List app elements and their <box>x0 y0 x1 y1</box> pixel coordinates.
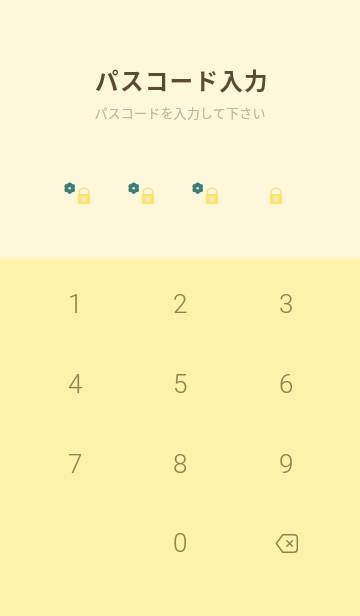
staticText: 6 <box>279 369 294 399</box>
staticText: パスコード入力 <box>2 63 360 97</box>
button[interactable]: 0 <box>144 514 216 572</box>
button[interactable]: 8 <box>144 435 216 493</box>
staticText: 2 <box>173 289 188 319</box>
button[interactable]: 7 <box>39 435 111 493</box>
button[interactable]: 6 <box>250 355 322 413</box>
button[interactable]: 9 <box>250 435 322 493</box>
staticText: 7 <box>68 449 83 479</box>
button[interactable]: 1 <box>39 275 111 333</box>
button[interactable]: 3 <box>250 275 322 333</box>
button[interactable]: 5 <box>144 355 216 413</box>
staticText: 5 <box>173 369 188 399</box>
button[interactable]: Delete <box>250 514 322 572</box>
staticText: 0 <box>173 528 188 558</box>
staticText: パスコードを入力して下さい <box>0 103 360 122</box>
staticText: 4 <box>68 369 83 399</box>
button[interactable]: 2 <box>144 275 216 333</box>
staticText: 3 <box>279 289 294 319</box>
button[interactable]: 4 <box>39 355 111 413</box>
staticText: 1 <box>68 289 83 319</box>
staticText: 9 <box>279 449 294 479</box>
staticText: 8 <box>173 449 188 479</box>
